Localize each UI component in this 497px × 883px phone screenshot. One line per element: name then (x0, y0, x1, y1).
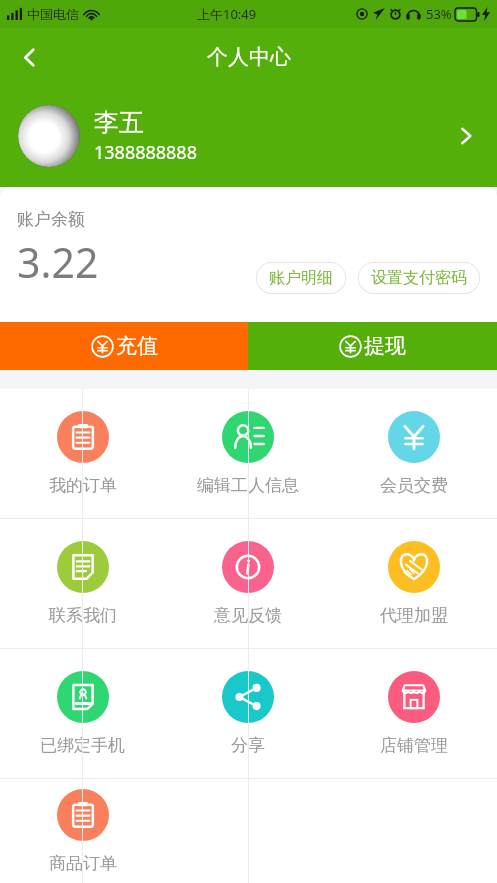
staticText: 意见反馈 (214, 605, 282, 626)
staticText: 个人中心 (207, 44, 291, 70)
staticText: 已绑定手机 (40, 735, 125, 756)
button[interactable]: 已绑定手机 (0, 649, 165, 778)
staticText: 3.22 (17, 234, 99, 290)
staticText: 编辑工人信息 (197, 475, 299, 496)
staticText: 联系我们 (49, 605, 117, 626)
button[interactable]: 店铺管理 (331, 649, 497, 778)
button[interactable]: 提现 (248, 322, 497, 370)
staticText: 中国电信 (27, 6, 79, 22)
button[interactable]: 我的订单 (0, 389, 165, 518)
button[interactable]: 账户明细 (256, 262, 346, 294)
button[interactable]: 分享 (165, 649, 331, 778)
staticText: 提现 (364, 333, 406, 359)
staticText: 我的订单 (49, 475, 117, 496)
staticText: 设置支付密码 (371, 268, 467, 288)
staticText: 1388888888 (94, 140, 197, 165)
button[interactable]: 意见反馈 (165, 519, 331, 648)
button[interactable]: 代理加盟 (331, 519, 497, 648)
staticText: 53% (426, 5, 452, 23)
button[interactable]: 设置支付密码 (358, 262, 480, 294)
staticText: 商品订单 (49, 853, 117, 874)
staticText: 店铺管理 (380, 735, 448, 756)
button[interactable]: 商品订单 (0, 779, 165, 883)
staticText: 代理加盟 (380, 605, 448, 626)
button[interactable]: 编辑工人信息 (165, 389, 331, 518)
staticText: 充值 (116, 333, 158, 359)
staticText: 账户明细 (269, 268, 333, 288)
staticText: 分享 (231, 735, 265, 756)
staticText: 李五 (94, 107, 144, 138)
button[interactable]: 充值 (0, 322, 248, 370)
staticText: 会员交费 (380, 475, 448, 496)
button[interactable]: 会员交费 (331, 389, 497, 518)
staticText: 账户余额 (17, 209, 85, 230)
button[interactable]: 李五 (0, 85, 497, 187)
staticText: 上午10:49 (197, 5, 257, 23)
button[interactable]: Back (6, 34, 52, 80)
button[interactable]: 联系我们 (0, 519, 165, 648)
